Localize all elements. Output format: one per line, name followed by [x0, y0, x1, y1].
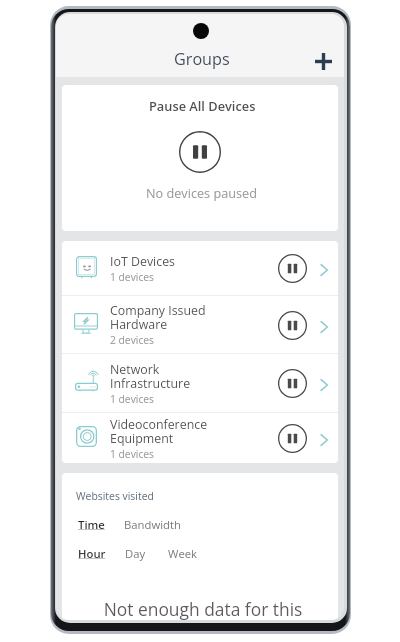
button[interactable]: Week	[168, 546, 198, 561]
staticText: Pause All Devices	[149, 97, 256, 114]
staticText: Videoconference Equipment	[110, 416, 208, 447]
button[interactable]: Open group	[314, 316, 332, 334]
button[interactable]: Time	[78, 517, 105, 532]
button[interactable]: Open group	[314, 374, 332, 392]
button[interactable]: IoT Devices	[62, 241, 338, 295]
button[interactable]: Pause group	[276, 422, 308, 454]
button[interactable]: Network Infrastructure	[62, 354, 338, 412]
staticText: No devices paused	[146, 184, 257, 201]
staticText: Company Issued Hardware	[110, 302, 206, 333]
staticText: Time	[78, 517, 105, 532]
button[interactable]: Pause all devices	[179, 131, 221, 173]
staticText: Week	[168, 546, 198, 561]
button[interactable]: Bandwidth	[124, 517, 181, 532]
button[interactable]: Videoconference Equipment	[62, 413, 338, 463]
button[interactable]: Open group	[314, 429, 332, 447]
staticText: 1 devices	[110, 270, 155, 284]
button[interactable]: Day	[125, 546, 146, 561]
button[interactable]: Open group	[314, 259, 332, 277]
staticText: Network Infrastructure	[110, 361, 191, 392]
staticText: IoT Devices	[110, 253, 176, 270]
button[interactable]: Pause group	[276, 367, 308, 399]
staticText: Not enough data for this	[65, 597, 338, 620]
button[interactable]: Add group	[310, 48, 336, 74]
staticText: 2 devices	[110, 333, 155, 347]
staticText: Websites visited	[76, 489, 154, 503]
staticText: Groups	[174, 48, 230, 70]
button[interactable]: Pause group	[276, 252, 308, 284]
staticText: Day	[125, 546, 146, 561]
staticText: 1 devices	[110, 392, 155, 406]
button[interactable]: Hour	[78, 546, 106, 561]
staticText: Hour	[78, 546, 106, 561]
button[interactable]: Pause group	[276, 309, 308, 341]
button[interactable]: Company Issued Hardware	[62, 296, 338, 353]
staticText: Bandwidth	[124, 517, 181, 532]
staticText: 1 devices	[110, 447, 155, 461]
